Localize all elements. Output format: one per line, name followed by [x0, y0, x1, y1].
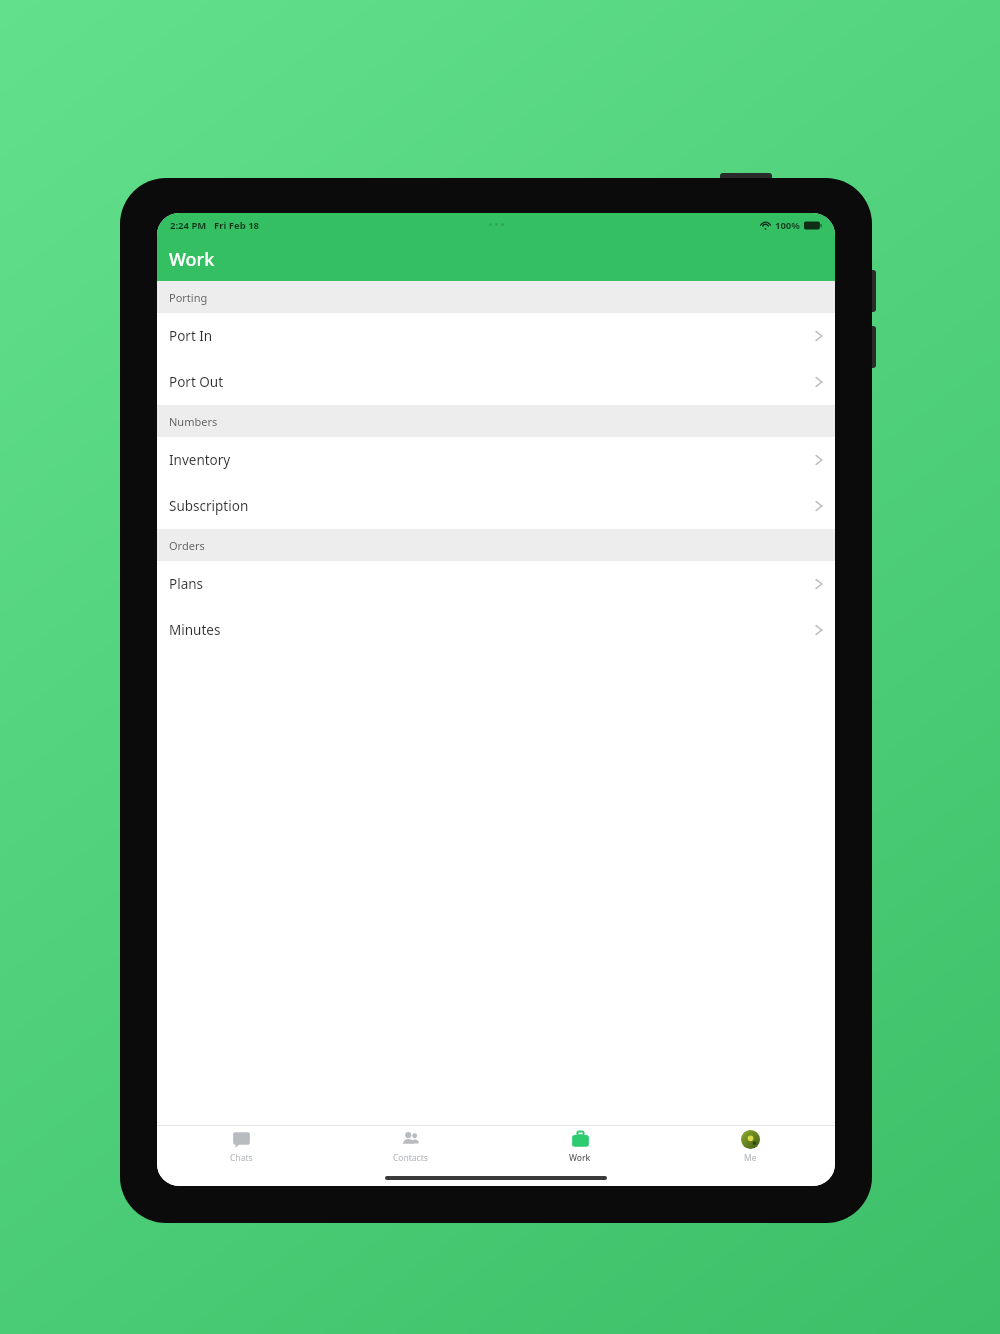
button[interactable]: Port In [157, 313, 835, 359]
button[interactable]: Inventory [157, 437, 835, 483]
button[interactable]: Work [495, 1126, 665, 1170]
button[interactable]: Minutes [157, 607, 835, 653]
staticText: Plans [169, 575, 204, 593]
other: Chats [232, 1130, 251, 1149]
staticText: Work [569, 1152, 591, 1164]
staticText: Inventory [169, 451, 231, 469]
staticText: Me [744, 1152, 757, 1164]
button[interactable]: Subscription [157, 483, 835, 529]
staticText: Orders [169, 538, 205, 553]
staticText: Minutes [169, 621, 221, 639]
button[interactable]: Contacts [326, 1126, 495, 1170]
other: Contacts [401, 1130, 420, 1149]
other: Me profile [741, 1130, 760, 1149]
staticText: Chats [230, 1152, 253, 1164]
staticText: 100% [775, 219, 800, 232]
staticText: Numbers [169, 414, 218, 429]
button[interactable]: Port Out [157, 359, 835, 405]
staticText: Port Out [169, 373, 224, 391]
staticText: Porting [169, 290, 208, 305]
button[interactable]: Me profile [665, 1126, 835, 1170]
staticText: Fri Feb 18 [214, 219, 260, 232]
button[interactable]: Chats [157, 1126, 326, 1170]
staticText: 2:24 PM [170, 219, 207, 232]
staticText: Subscription [169, 497, 249, 515]
other: Work [571, 1130, 590, 1149]
button[interactable]: Plans [157, 561, 835, 607]
staticText: Port In [169, 327, 213, 345]
staticText: Contacts [393, 1152, 428, 1164]
staticText: Work [169, 247, 215, 272]
